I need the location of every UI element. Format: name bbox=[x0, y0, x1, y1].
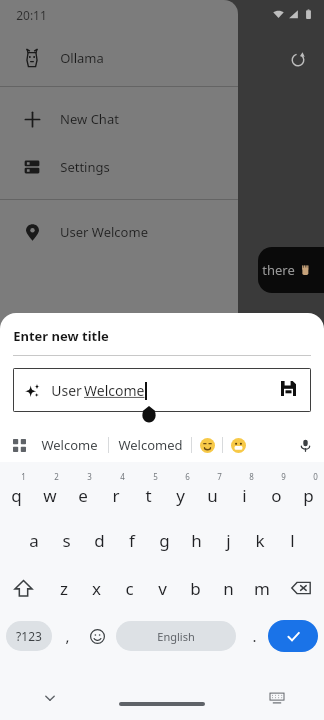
button[interactable]: f bbox=[116, 516, 148, 564]
button[interactable]: , bbox=[52, 612, 82, 660]
button[interactable]: English bbox=[116, 621, 236, 651]
staticText: User bbox=[49, 381, 84, 400]
staticText: Ollama bbox=[60, 49, 104, 67]
staticText: p bbox=[303, 484, 314, 507]
button[interactable]: c bbox=[113, 564, 146, 612]
button[interactable]: k bbox=[244, 516, 276, 564]
button[interactable]: w bbox=[33, 468, 66, 516]
button[interactable]: User bbox=[13, 368, 311, 412]
staticText: w bbox=[43, 484, 57, 507]
button[interactable]: g bbox=[148, 516, 180, 564]
staticText: 4 bbox=[120, 471, 125, 482]
staticText: l bbox=[290, 529, 295, 552]
button[interactable]: Voice input bbox=[292, 432, 318, 458]
staticText: 9 bbox=[281, 471, 286, 482]
button[interactable]: o bbox=[260, 468, 292, 516]
staticText: t bbox=[145, 484, 152, 507]
staticText: u bbox=[207, 484, 218, 507]
staticText: c bbox=[125, 577, 134, 600]
staticText: 0 bbox=[313, 471, 318, 482]
button[interactable]: Ollama bbox=[0, 30, 238, 86]
button[interactable]: Shift bbox=[0, 564, 47, 612]
staticText: d bbox=[94, 529, 105, 552]
button[interactable]: v bbox=[146, 564, 179, 612]
staticText: v bbox=[158, 577, 167, 600]
staticText: 3 bbox=[87, 471, 92, 482]
button[interactable]: r bbox=[99, 468, 132, 516]
staticText: ?123 bbox=[16, 628, 42, 644]
staticText: 7 bbox=[217, 471, 222, 482]
staticText: there bbox=[262, 261, 295, 279]
staticText: m bbox=[254, 577, 270, 600]
staticText: r bbox=[112, 484, 120, 507]
staticText: Settings bbox=[60, 158, 110, 176]
button[interactable]: x bbox=[80, 564, 113, 612]
button[interactable]: a bbox=[17, 516, 50, 564]
button[interactable]: ?123 bbox=[6, 621, 52, 651]
button[interactable]: e bbox=[66, 468, 99, 516]
staticText: y bbox=[176, 484, 185, 507]
staticText: b bbox=[190, 577, 201, 600]
staticText: h bbox=[191, 529, 202, 552]
staticText: a bbox=[29, 529, 39, 552]
button[interactable]: Backspace bbox=[278, 564, 324, 612]
button[interactable]: Save bbox=[281, 381, 299, 399]
button[interactable]: q bbox=[0, 468, 33, 516]
button[interactable]: Emoji bbox=[82, 612, 112, 660]
staticText: 5 bbox=[153, 471, 158, 482]
staticText: 20:11 bbox=[16, 7, 47, 23]
staticText: x bbox=[92, 577, 101, 600]
button[interactable]: New Chat bbox=[0, 95, 238, 143]
button[interactable]: Settings bbox=[0, 143, 238, 191]
staticText: g bbox=[159, 529, 170, 552]
button[interactable]: Switch keyboard bbox=[268, 689, 286, 707]
staticText: z bbox=[60, 577, 68, 600]
button[interactable]: s bbox=[50, 516, 83, 564]
button[interactable]: u bbox=[196, 468, 228, 516]
staticText: 1 bbox=[21, 471, 26, 482]
staticText: Welcome bbox=[84, 381, 145, 400]
button[interactable]: n bbox=[212, 564, 245, 612]
staticText: New Chat bbox=[60, 110, 119, 128]
button[interactable]: Welcomed bbox=[109, 428, 191, 462]
button[interactable]: p bbox=[292, 468, 324, 516]
button[interactable]: y bbox=[164, 468, 196, 516]
button[interactable]: l bbox=[276, 516, 308, 564]
button[interactable] bbox=[192, 428, 222, 462]
staticText: j bbox=[226, 529, 231, 552]
button[interactable]: User Welcome bbox=[0, 208, 238, 256]
staticText: Enter new title bbox=[13, 327, 109, 345]
button[interactable] bbox=[223, 428, 253, 462]
staticText: 6 bbox=[185, 471, 190, 482]
button[interactable]: h bbox=[180, 516, 212, 564]
button[interactable]: j bbox=[212, 516, 244, 564]
button[interactable]: z bbox=[47, 564, 80, 612]
staticText: Welcome bbox=[41, 436, 98, 454]
staticText: User Welcome bbox=[60, 223, 148, 241]
staticText: English bbox=[157, 629, 195, 644]
button[interactable]: i bbox=[228, 468, 260, 516]
button[interactable]: Hide keyboard bbox=[40, 688, 60, 708]
button[interactable]: m bbox=[245, 564, 278, 612]
button[interactable]: Welcome bbox=[30, 428, 108, 462]
staticText: o bbox=[271, 484, 282, 507]
button[interactable]: t bbox=[132, 468, 164, 516]
staticText: . bbox=[252, 626, 257, 646]
button[interactable]: . bbox=[240, 612, 268, 660]
staticText: Welcomed bbox=[118, 436, 183, 454]
button[interactable]: b bbox=[179, 564, 212, 612]
button[interactable]: d bbox=[83, 516, 116, 564]
staticText: 2 bbox=[54, 471, 59, 482]
staticText: i bbox=[242, 484, 247, 507]
staticText: n bbox=[223, 577, 234, 600]
staticText: , bbox=[65, 626, 70, 646]
staticText: 8 bbox=[249, 471, 254, 482]
button[interactable]: Toolbar bbox=[8, 434, 30, 456]
staticText: q bbox=[11, 484, 22, 507]
button[interactable]: Enter bbox=[268, 620, 318, 652]
staticText: e bbox=[78, 484, 88, 507]
staticText: s bbox=[62, 529, 71, 552]
staticText: k bbox=[255, 529, 265, 552]
button[interactable]: Refresh bbox=[290, 52, 310, 72]
staticText: f bbox=[129, 529, 135, 552]
